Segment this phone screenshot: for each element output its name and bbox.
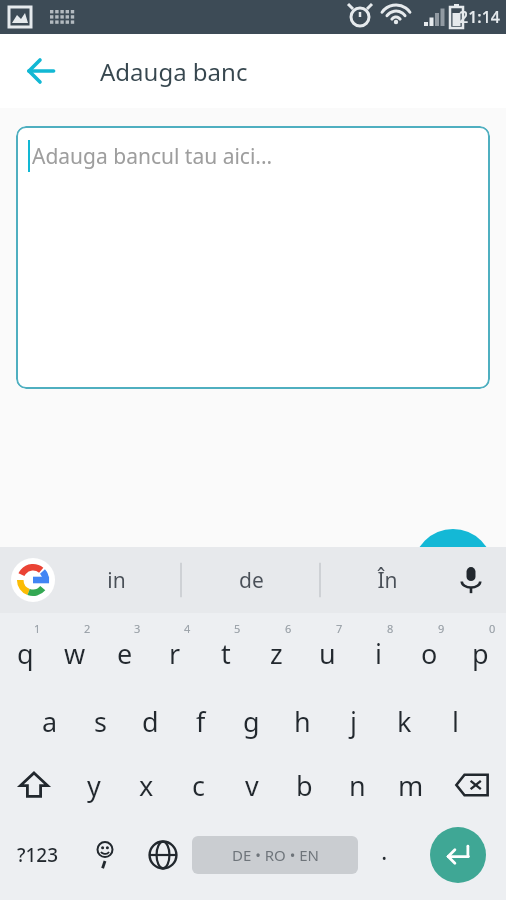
staticText: t (221, 635, 231, 672)
staticText: p (472, 635, 489, 672)
staticText: q (17, 635, 34, 672)
button[interactable]: În (332, 547, 442, 613)
staticText: m (398, 767, 424, 804)
button[interactable]: ?123 (0, 819, 76, 891)
button[interactable]: 8 (353, 615, 404, 683)
button[interactable]: 4 (150, 615, 200, 683)
staticText: in (107, 566, 126, 595)
staticText: În (377, 566, 398, 595)
staticText: h (294, 703, 311, 740)
button[interactable]: Enter (430, 827, 486, 883)
staticText: z (270, 635, 283, 672)
staticText: w (64, 635, 86, 672)
staticText: g (243, 703, 260, 740)
button[interactable]: v (225, 751, 278, 819)
staticText: r (169, 635, 181, 672)
staticText: s (94, 703, 107, 740)
button[interactable]: 0 (455, 615, 506, 683)
button[interactable]: j (328, 683, 379, 751)
staticText: b (296, 767, 313, 804)
staticText: Adauga banc (100, 55, 248, 88)
staticText: k (397, 703, 412, 740)
button[interactable]: Google (9, 556, 57, 604)
staticText: j (350, 703, 357, 740)
staticText: a (42, 703, 58, 740)
button[interactable]: s (75, 683, 125, 751)
staticText: f (196, 703, 206, 740)
button[interactable]: . (358, 819, 410, 891)
button[interactable]: y (68, 751, 120, 819)
button[interactable]: Adauga bancul tau aici... (16, 126, 490, 389)
button[interactable]: 6 (251, 615, 302, 683)
staticText: l (452, 703, 459, 740)
button[interactable]: 2 (50, 615, 100, 683)
staticText: 1 (34, 621, 41, 636)
button[interactable]: Add (413, 529, 493, 609)
button[interactable]: Emoji (76, 819, 134, 891)
button[interactable]: in (61, 547, 171, 613)
staticText: 21:14 (459, 6, 500, 28)
staticText: c (192, 767, 205, 804)
button[interactable]: a (25, 683, 75, 751)
staticText: 3 (134, 621, 141, 636)
staticText: 6 (285, 621, 292, 636)
button[interactable]: Change language (134, 819, 192, 891)
staticText: u (319, 635, 336, 672)
staticText: i (375, 635, 382, 672)
staticText: 9 (438, 621, 445, 636)
button[interactable]: m (384, 751, 437, 819)
button[interactable]: h (277, 683, 328, 751)
button[interactable]: de (196, 547, 306, 613)
staticText: . (381, 834, 388, 867)
button[interactable]: 9 (404, 615, 455, 683)
button[interactable]: d (125, 683, 175, 751)
button[interactable]: 5 (200, 615, 251, 683)
staticText: x (139, 767, 154, 804)
staticText: 2 (84, 621, 91, 636)
button[interactable]: f (175, 683, 226, 751)
button[interactable]: k (379, 683, 430, 751)
staticText: n (349, 767, 366, 804)
staticText: o (421, 635, 438, 672)
button[interactable]: 1 (0, 615, 50, 683)
button[interactable]: Shift (0, 751, 68, 819)
staticText: DE • RO • EN (232, 845, 319, 865)
staticText: e (117, 635, 133, 672)
staticText: 0 (489, 621, 496, 636)
button[interactable]: c (172, 751, 225, 819)
button[interactable]: DE • RO • EN (192, 836, 358, 874)
staticText: 7 (336, 621, 343, 636)
staticText: 8 (387, 621, 394, 636)
button[interactable]: x (120, 751, 172, 819)
button[interactable]: 7 (302, 615, 353, 683)
staticText: 5 (234, 621, 241, 636)
button[interactable]: Voice input (446, 555, 496, 605)
staticText: d (142, 703, 159, 740)
button[interactable]: 3 (100, 615, 150, 683)
staticText: Adauga bancul tau aici... (32, 142, 273, 171)
button[interactable]: g (226, 683, 277, 751)
staticText: 4 (184, 621, 191, 636)
staticText: v (245, 767, 259, 804)
staticText: de (239, 566, 264, 595)
button[interactable]: l (430, 683, 481, 751)
button[interactable]: n (331, 751, 384, 819)
button[interactable]: b (278, 751, 331, 819)
button[interactable]: Back (14, 44, 68, 98)
staticText: ?123 (17, 842, 59, 868)
button[interactable]: Backspace (437, 751, 506, 819)
staticText: y (87, 767, 101, 804)
